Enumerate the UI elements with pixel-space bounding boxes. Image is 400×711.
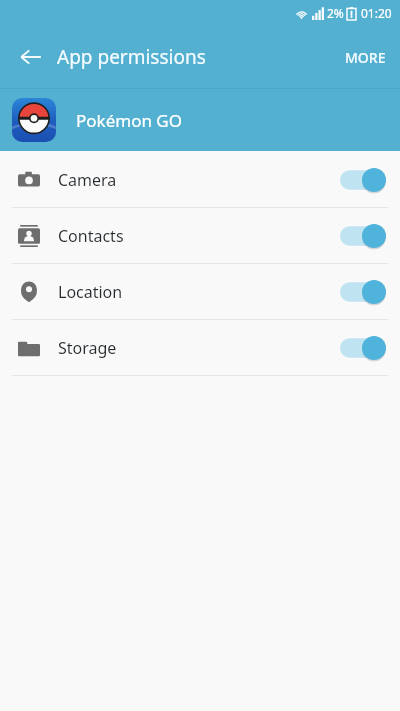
staticText: 01:20 bbox=[361, 5, 392, 21]
button[interactable]: Pokémon GO bbox=[0, 89, 400, 151]
button[interactable]: Camera permission toggle bbox=[326, 156, 400, 204]
staticText: Camera bbox=[58, 169, 117, 191]
button[interactable]: Contacts bbox=[0, 208, 400, 263]
staticText: 2% bbox=[327, 5, 344, 21]
staticText: Location bbox=[58, 281, 123, 303]
staticText: MORE bbox=[345, 48, 386, 67]
staticText: App permissions bbox=[57, 44, 206, 70]
button[interactable]: Storage permission toggle bbox=[326, 324, 400, 372]
button[interactable]: Location bbox=[0, 264, 400, 319]
button[interactable]: Storage bbox=[0, 320, 400, 375]
button[interactable]: Location permission toggle bbox=[326, 268, 400, 316]
button[interactable]: Navigate up bbox=[8, 34, 54, 80]
staticText: Storage bbox=[58, 337, 117, 359]
button[interactable]: MORE bbox=[331, 34, 400, 81]
staticText: Contacts bbox=[58, 225, 124, 247]
button[interactable]: Contacts permission toggle bbox=[326, 212, 400, 260]
staticText: Pokémon GO bbox=[76, 109, 182, 132]
button[interactable]: Camera bbox=[0, 152, 400, 207]
